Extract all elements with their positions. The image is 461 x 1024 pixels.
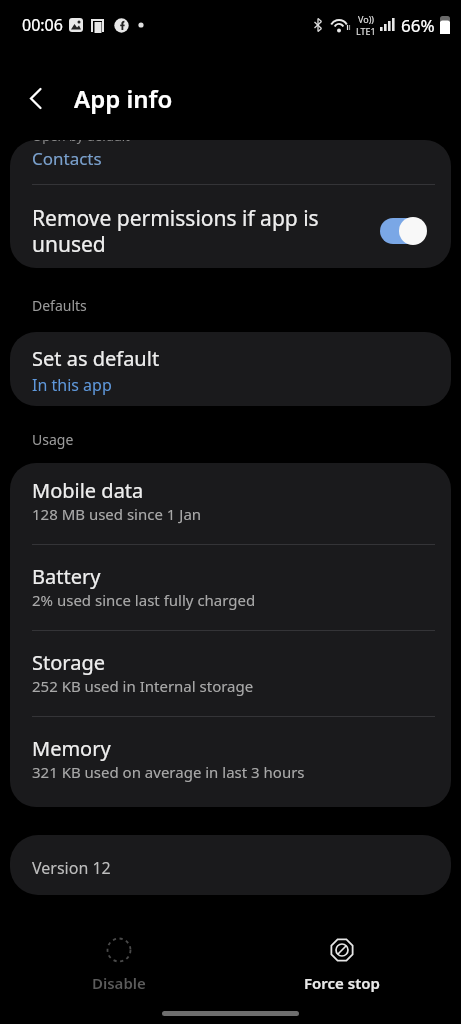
button[interactable]: Battery bbox=[10, 545, 451, 630]
staticText: 66% bbox=[401, 14, 435, 37]
staticText: Version 12 bbox=[32, 857, 111, 879]
button[interactable]: Mobile data bbox=[10, 463, 451, 544]
staticText: Open by default bbox=[32, 140, 130, 147]
staticText: Contacts bbox=[32, 147, 102, 170]
button[interactable]: Contacts bbox=[10, 147, 451, 170]
button[interactable]: Force stop bbox=[230, 937, 453, 993]
staticText: Memory bbox=[32, 735, 111, 762]
staticText: Set as default bbox=[32, 345, 160, 372]
staticText: 252 KB used in Internal storage bbox=[32, 676, 254, 696]
button[interactable]: Memory bbox=[10, 717, 451, 807]
button[interactable]: Disable bbox=[8, 937, 230, 993]
staticText: Remove permissions if app is unused bbox=[32, 204, 379, 258]
button[interactable]: Remove permissions if app is unused bbox=[10, 185, 451, 268]
staticText: LTE1 bbox=[356, 25, 376, 37]
staticText: Disable bbox=[92, 973, 146, 993]
staticText: Mobile data bbox=[32, 477, 144, 504]
staticText: Defaults bbox=[32, 296, 87, 315]
button[interactable]: Version 12 bbox=[10, 835, 451, 895]
staticText: 00:06 bbox=[22, 14, 63, 36]
staticText: Usage bbox=[32, 430, 74, 449]
button[interactable]: Set as default bbox=[10, 332, 451, 406]
staticText: 128 MB used since 1 Jan bbox=[32, 504, 202, 524]
staticText: In this app bbox=[32, 374, 112, 396]
staticText: App info bbox=[74, 82, 173, 115]
staticText: Vo)) bbox=[358, 13, 375, 25]
button[interactable] bbox=[16, 78, 56, 118]
button[interactable] bbox=[379, 217, 427, 245]
staticText: 2% used since last fully charged bbox=[32, 590, 256, 610]
staticText: 321 KB used on average in last 3 hours bbox=[32, 762, 305, 782]
staticText: Force stop bbox=[304, 973, 380, 993]
staticText: Battery bbox=[32, 563, 101, 590]
button[interactable]: Storage bbox=[10, 631, 451, 716]
staticText: Storage bbox=[32, 649, 105, 676]
